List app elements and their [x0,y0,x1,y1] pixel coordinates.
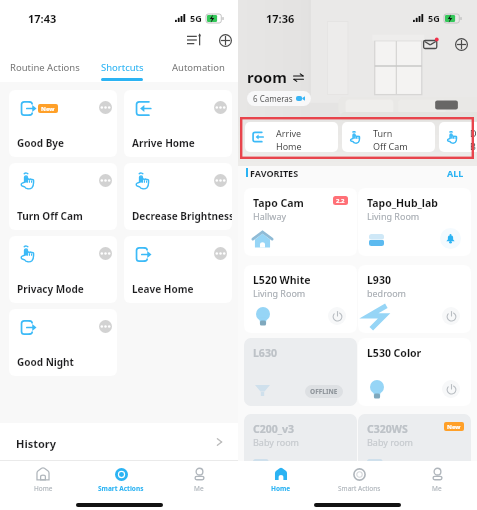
button[interactable]: Switch room [292,71,304,83]
button[interactable]: More options [99,320,112,333]
staticText: Baby room [367,436,414,448]
staticText: Living Room [253,287,306,299]
button[interactable]: Power [442,380,460,398]
staticText: 5G [428,12,440,24]
button[interactable]: Add device [453,36,469,52]
button[interactable]: More options [124,90,232,157]
staticText: Hallway [253,210,287,222]
staticText: L930 [367,273,391,287]
staticText: L530 Color [367,346,422,360]
button[interactable]: Add shortcut [217,32,233,48]
staticText: Smart Actions [98,484,144,493]
button[interactable]: History [0,423,238,460]
staticText: 2.2 [336,197,345,205]
button[interactable]: Smart Actions [86,461,156,497]
button[interactable]: More options [99,174,112,187]
button[interactable]: More options [99,101,112,114]
button[interactable]: Routine Actions [5,57,85,82]
staticText: Home [34,484,53,493]
staticText: Baby room [253,436,300,448]
button[interactable]: More options [214,247,227,260]
button[interactable]: Tapo Cam [244,188,357,256]
button[interactable]: Sort [186,32,202,48]
button[interactable]: More options [9,309,117,376]
staticText: Tapo_Hub_lab [367,196,438,210]
staticText: 17:36 [266,11,295,26]
button[interactable]: Home [246,461,316,497]
staticText: Smart Actions [338,484,381,493]
button[interactable]: Power [328,307,346,325]
staticText: Living Room [367,210,420,222]
staticText: C200_v3 [253,422,295,436]
staticText: Shortcuts [101,61,144,74]
staticText: Home [276,140,302,152]
button[interactable]: ALL [447,167,464,179]
staticText: ALL [447,167,464,179]
staticText: Decrease Brightness [132,209,232,223]
staticText: Leave Home [132,282,194,296]
staticText: FAVORITES [250,167,299,179]
staticText: L630 [253,346,277,360]
staticText: Privacy Mode [17,282,84,296]
staticText: room [247,67,287,87]
button[interactable]: More options [214,174,227,187]
staticText: Me [194,484,204,493]
staticText: Off Cam [373,140,408,152]
staticText: Turn [373,127,393,139]
button[interactable]: Messages [423,36,439,52]
button[interactable]: More options [124,236,232,303]
staticText: OFFLINE [424,463,452,472]
staticText: OFFLINE [310,387,338,396]
button[interactable]: More options [9,236,117,303]
button[interactable]: More options [99,247,112,260]
staticText: History [16,436,57,451]
button[interactable]: 6 Cameras [247,91,311,106]
staticText: Tapo Cam [253,196,304,210]
button[interactable]: Power [442,307,460,325]
button[interactable]: D [439,122,477,152]
button[interactable]: Automation [158,57,238,82]
button[interactable]: More options [124,163,232,230]
staticText: B [470,140,476,152]
button[interactable]: Me [164,461,234,497]
button[interactable]: L930 [358,265,471,333]
button[interactable]: Home [8,461,78,497]
staticText: New [41,105,55,113]
button[interactable]: Shortcuts [82,57,162,82]
staticText: Turn Off Cam [17,209,83,223]
staticText: Arrive [276,127,302,139]
staticText: Arrive Home [132,136,195,150]
staticText: 5G [190,12,202,24]
button[interactable]: L630 [244,338,357,406]
button[interactable]: Turn [342,122,435,152]
staticText: Routine Actions [10,61,80,74]
button[interactable]: C320WS [358,414,471,482]
staticText: Good Bye [17,136,64,150]
button[interactable]: L520 White [244,265,357,333]
button[interactable]: Me [402,461,472,497]
button[interactable]: Tapo_Hub_lab [358,188,471,256]
button[interactable]: L530 Color [358,338,471,406]
button[interactable]: More options [214,101,227,114]
staticText: L520 White [253,273,311,287]
staticText: Automation [172,61,225,74]
button[interactable]: Alarm [440,228,461,249]
staticText: Me [432,484,442,493]
staticText: 6 Cameras [253,93,293,104]
button[interactable]: C200_v3 [244,414,357,482]
button[interactable]: Smart Actions [324,461,394,497]
staticText: D [470,127,477,139]
staticText: 17:43 [28,11,57,26]
staticText: Home [271,484,291,493]
staticText: New [447,423,461,431]
staticText: bedroom [367,287,406,299]
button[interactable]: Arrive [245,122,338,152]
button[interactable]: More options [9,163,117,230]
button[interactable]: New [9,90,117,157]
staticText: Good Night [17,355,74,369]
staticText: C320WS [367,422,408,436]
